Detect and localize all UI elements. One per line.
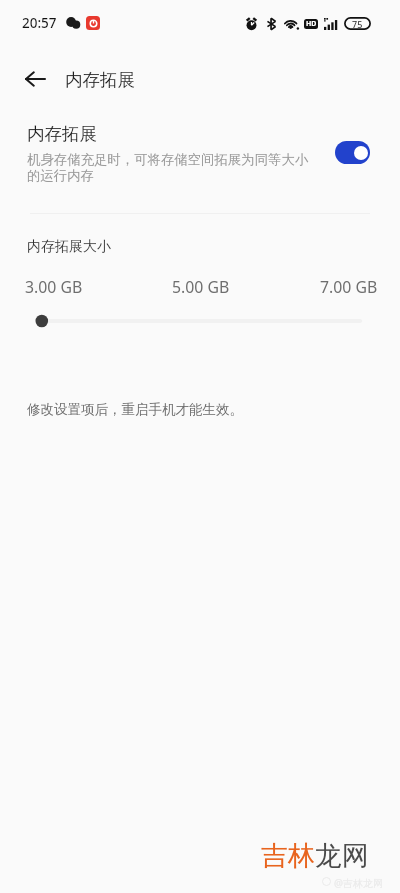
staticText: 3.00 GB [25,276,83,296]
staticText: 内存拓展 [27,123,97,145]
staticText: 内存拓展 [65,69,135,91]
staticText: @吉林龙网 [334,876,383,890]
button[interactable]: Memory expansion size slider [0,309,400,333]
staticText: 吉林 [261,839,315,873]
staticText: 7.00 GB [320,276,378,296]
button[interactable]: Back [13,57,57,101]
staticText: 20:57 [22,14,57,32]
staticText: 75 [352,18,363,30]
staticText: 内存拓展大小 [27,238,111,256]
staticText: 5.00 GB [172,276,230,296]
staticText: HD [306,19,317,29]
staticText: 龙网 [315,839,369,873]
button[interactable]: 内存拓展 [0,112,400,206]
staticText: 修改设置项后，重启手机才能生效。 [27,401,243,418]
staticText: 的运行内存 [27,167,94,184]
button[interactable]: Toggle memory expansion [335,141,370,164]
staticText: 机身存储充足时，可将存储空间拓展为同等大小 [27,151,309,168]
